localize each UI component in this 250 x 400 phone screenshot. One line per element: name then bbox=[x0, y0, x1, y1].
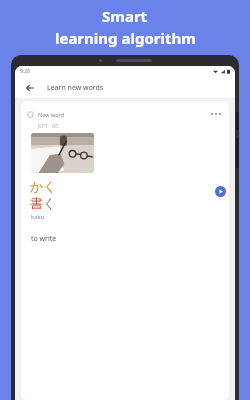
staticText: く bbox=[43, 195, 57, 211]
staticText: 9:26 bbox=[20, 68, 30, 75]
staticText: Learn new words bbox=[47, 83, 104, 93]
staticText: kaku bbox=[31, 213, 45, 221]
button[interactable]: New word bbox=[21, 101, 229, 400]
staticText: 書 bbox=[30, 195, 43, 211]
button[interactable]: Back bbox=[23, 81, 37, 95]
staticText: New word bbox=[38, 111, 65, 118]
button[interactable]: More options bbox=[209, 107, 223, 121]
staticText: Smart bbox=[102, 6, 148, 26]
staticText: to write bbox=[31, 234, 57, 244]
staticText: JLPT - N5 bbox=[38, 123, 59, 130]
button[interactable]: Play pronunciation bbox=[213, 184, 227, 198]
staticText: learning algorithm bbox=[55, 28, 196, 48]
staticText: かく bbox=[30, 178, 57, 194]
